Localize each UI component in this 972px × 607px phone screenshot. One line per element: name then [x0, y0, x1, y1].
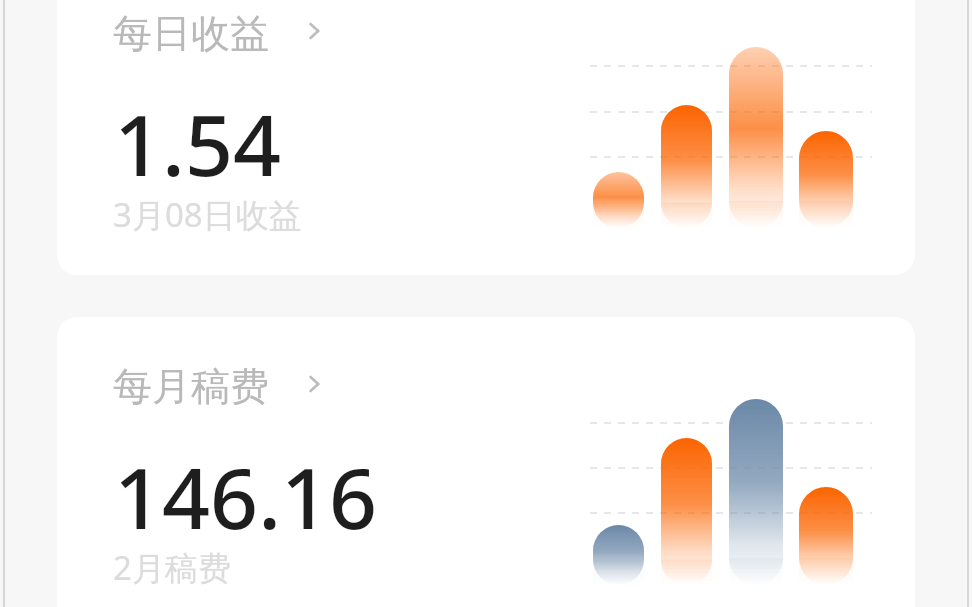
button[interactable]: 查看每日收益详情 [296, 10, 332, 46]
button[interactable]: 查看每月稿费详情 [296, 362, 332, 398]
button[interactable] [57, 317, 915, 607]
button[interactable] [57, 0, 915, 275]
